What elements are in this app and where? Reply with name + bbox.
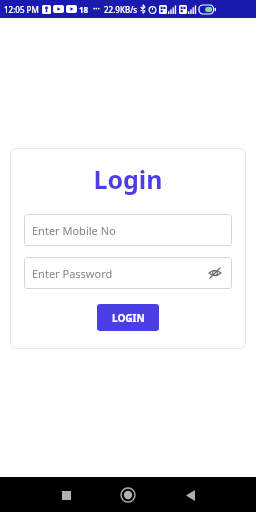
button[interactable]: Show password xyxy=(206,264,224,282)
button[interactable]: Enter Password xyxy=(24,257,232,289)
staticText: ••• xyxy=(93,5,100,13)
staticText: Enter Password xyxy=(32,266,206,281)
button[interactable]: Recent apps xyxy=(50,479,82,511)
button[interactable]: Enter Mobile No xyxy=(24,214,232,246)
staticText: 12:05 PM xyxy=(4,4,39,15)
staticText: Enter Mobile No xyxy=(32,223,224,238)
staticText: Login xyxy=(93,162,163,196)
staticText: 18 xyxy=(79,4,89,15)
button[interactable]: LOGIN xyxy=(97,304,159,331)
button[interactable]: Home xyxy=(112,479,144,511)
staticText: 22.9KB/s xyxy=(104,4,138,15)
button[interactable]: Back xyxy=(174,479,206,511)
staticText: LOGIN xyxy=(112,311,145,325)
